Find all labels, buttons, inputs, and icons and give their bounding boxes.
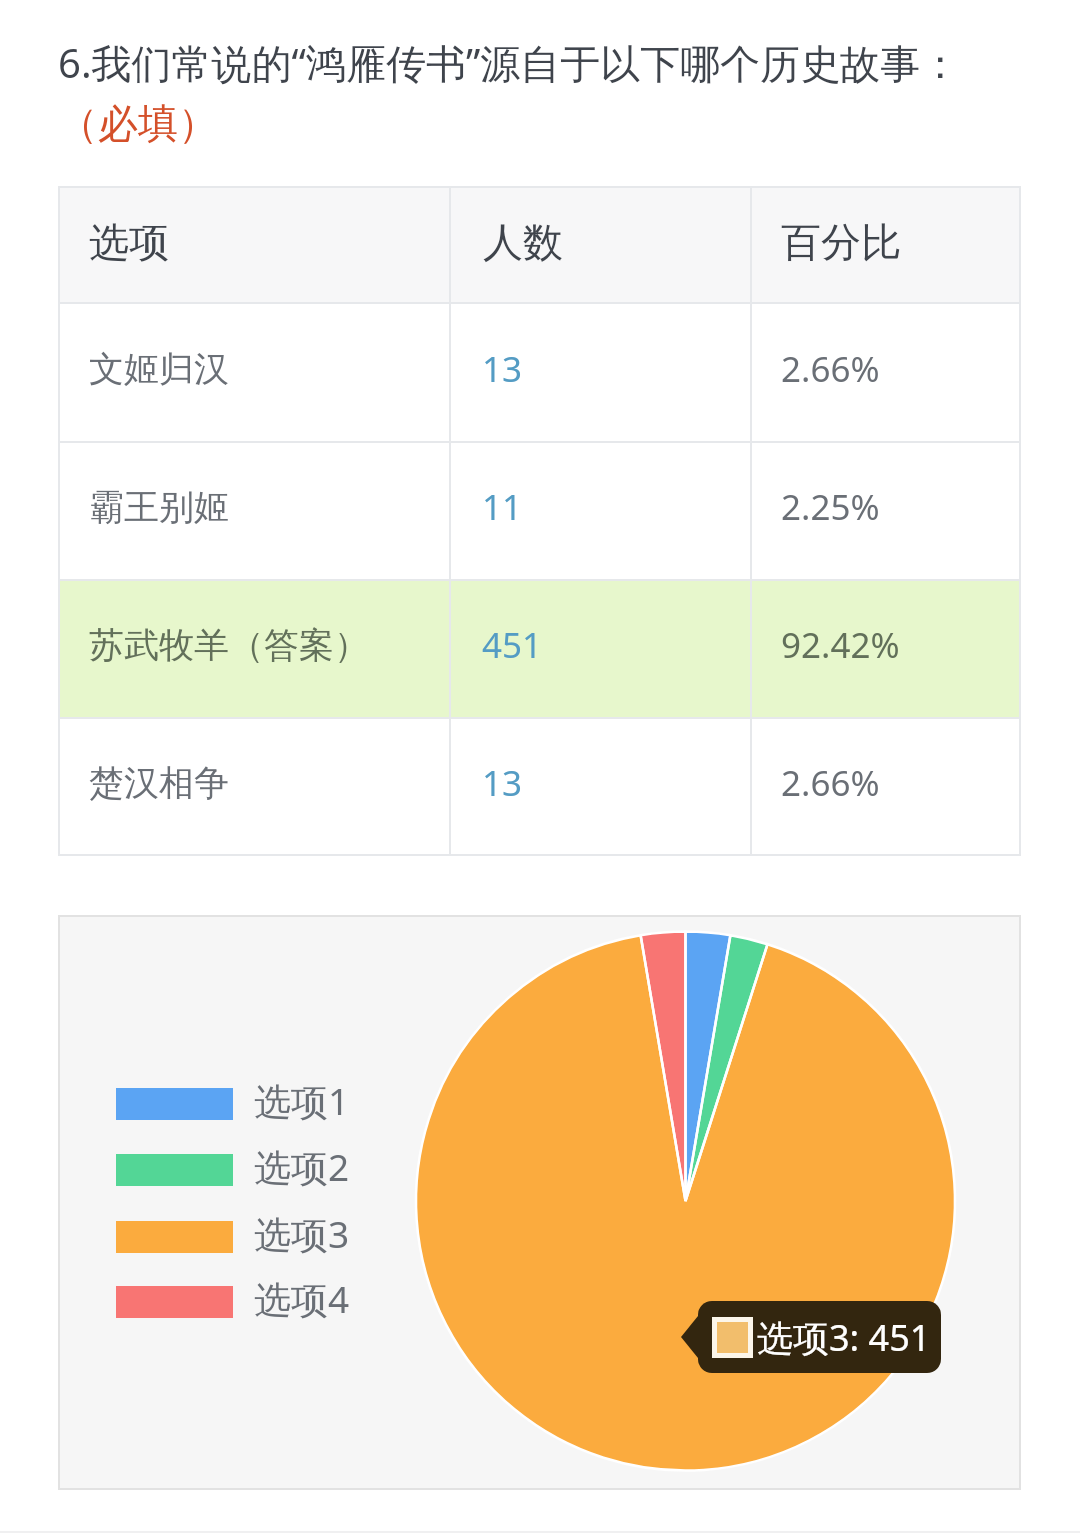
button[interactable]: 选项2	[116, 1140, 356, 1200]
staticText: 13	[482, 345, 523, 393]
staticText: 选项3	[254, 1208, 350, 1259]
staticText: 2.66%	[781, 345, 880, 393]
staticText: 选项4	[254, 1273, 350, 1324]
staticText: 92.42%	[781, 621, 900, 669]
staticText: 11	[482, 483, 523, 531]
button[interactable]: 选项3: 451	[681, 1301, 941, 1373]
staticText: 2.25%	[781, 483, 880, 531]
staticText: 选项	[89, 217, 169, 267]
button[interactable]: 霸王别姬	[59, 441, 1020, 579]
staticText: 6.我们常说的“鸿雁传书”源自于以下哪个历史故事：	[58, 35, 961, 90]
staticText: 文姬归汉	[89, 347, 229, 391]
staticText: 人数	[483, 217, 563, 267]
button[interactable]: 选项4	[116, 1272, 356, 1332]
button[interactable]: 文姬归汉	[59, 302, 1020, 441]
staticText: （必填）	[58, 98, 218, 148]
button[interactable]: 选项3	[116, 1207, 356, 1267]
button[interactable]: 选项	[59, 187, 1020, 302]
staticText: 选项2	[254, 1141, 350, 1192]
staticText: 选项1	[254, 1075, 350, 1126]
staticText: 2.66%	[781, 759, 880, 807]
button[interactable]: 选项1	[116, 1074, 356, 1134]
staticText: 451	[482, 621, 543, 669]
button[interactable]: 苏武牧羊（答案）	[59, 579, 1020, 717]
staticText: 13	[482, 759, 523, 807]
staticText: 百分比	[781, 217, 901, 267]
other: 选项占比饼图	[59, 916, 1020, 1489]
staticText: 楚汉相争	[89, 761, 229, 805]
staticText: 选项3: 451	[757, 1313, 931, 1362]
button[interactable]: 楚汉相争	[59, 717, 1020, 855]
staticText: 霸王别姬	[89, 485, 229, 529]
staticText: 苏武牧羊（答案）	[89, 623, 369, 667]
